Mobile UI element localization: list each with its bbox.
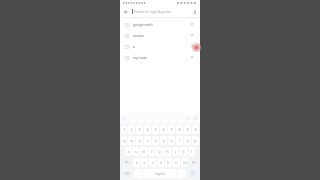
staticText: s	[135, 149, 137, 154]
staticText: ,	[137, 171, 139, 176]
button[interactable]: Back	[122, 8, 129, 15]
staticText: l	[191, 149, 192, 154]
staticText: 7	[170, 127, 173, 132]
button[interactable]: Search for apps & games	[132, 6, 191, 17]
staticText: 0	[194, 127, 197, 132]
staticText: i	[179, 138, 180, 143]
button[interactable]: y	[160, 136, 167, 145]
staticText: v	[160, 160, 162, 165]
button[interactable]: g	[156, 147, 163, 156]
staticText: x	[143, 160, 146, 165]
button[interactable]: 9	[184, 125, 191, 134]
staticText: a	[127, 149, 130, 154]
button[interactable]: l	[188, 147, 195, 156]
staticText: u	[170, 138, 173, 143]
staticText: k	[182, 149, 185, 154]
staticText: Search for apps & games	[134, 10, 172, 14]
button[interactable]: ?123	[121, 169, 133, 178]
staticText: b	[167, 160, 170, 165]
button[interactable]: Backspace	[189, 158, 199, 167]
button[interactable]: google earth	[120, 19, 200, 30]
staticText: 4	[146, 127, 149, 132]
button[interactable]: b	[165, 158, 172, 167]
button[interactable]: d	[140, 147, 147, 156]
staticText: 5	[154, 127, 157, 132]
button[interactable]: j	[172, 147, 179, 156]
staticText: movies	[133, 34, 144, 38]
staticText: f	[151, 149, 153, 154]
staticText: r	[147, 138, 149, 143]
button[interactable]: n	[173, 158, 180, 167]
staticText: g	[158, 149, 161, 154]
button[interactable]: 5	[152, 125, 159, 134]
staticText: q	[123, 138, 126, 143]
button[interactable]: my route	[120, 52, 200, 63]
button[interactable]: x	[141, 158, 148, 167]
staticText: n	[175, 160, 178, 165]
button[interactable]: m	[181, 158, 188, 167]
staticText: o	[186, 138, 189, 143]
button[interactable]: Search	[187, 169, 199, 178]
button[interactable]: i	[176, 136, 183, 145]
staticText: j	[175, 149, 176, 154]
staticText: y	[163, 138, 165, 143]
button[interactable]: 3	[136, 125, 143, 134]
button[interactable]: 7	[168, 125, 175, 134]
staticText: 1	[123, 127, 126, 132]
staticText: h	[166, 149, 169, 154]
button[interactable]: o	[184, 136, 191, 145]
staticText: t	[155, 138, 157, 143]
staticText: 2	[130, 127, 133, 132]
staticText: .	[181, 171, 183, 176]
button[interactable]: Shift	[121, 158, 132, 167]
button[interactable]: e	[136, 136, 143, 145]
button[interactable]: f	[148, 147, 155, 156]
button[interactable]: q	[121, 136, 127, 145]
staticText: google earth	[133, 23, 153, 27]
button[interactable]: a	[125, 147, 131, 156]
staticText: d	[142, 149, 145, 154]
button[interactable]: ,	[134, 169, 142, 178]
button[interactable]: movies	[120, 30, 200, 41]
button[interactable]: t	[152, 136, 159, 145]
button[interactable]: 1	[121, 125, 127, 134]
button[interactable]: c	[149, 158, 156, 167]
staticText: 9	[186, 127, 189, 132]
button[interactable]: a	[120, 41, 200, 52]
button[interactable]: u	[168, 136, 175, 145]
button[interactable]: 6	[160, 125, 167, 134]
button[interactable]: z	[133, 158, 140, 167]
button[interactable]: v	[157, 158, 164, 167]
button[interactable]: s	[132, 147, 139, 156]
staticText: e	[138, 138, 141, 143]
staticText: 6	[162, 127, 165, 132]
button[interactable]: Voice search	[191, 8, 198, 15]
button[interactable]: h	[164, 147, 171, 156]
button[interactable]: p	[192, 136, 199, 145]
staticText: c	[152, 160, 154, 165]
button[interactable]: w	[128, 136, 135, 145]
staticText: w	[130, 138, 133, 143]
staticText: a	[133, 45, 135, 49]
staticText: z	[136, 160, 138, 165]
staticText: English	[155, 172, 165, 176]
button[interactable]: r	[144, 136, 151, 145]
button[interactable]: 2	[128, 125, 135, 134]
staticText: 3	[138, 127, 141, 132]
button[interactable]: 4	[144, 125, 151, 134]
staticText: m	[183, 160, 187, 165]
staticText: ?123	[124, 172, 130, 176]
button[interactable]: k	[180, 147, 187, 156]
button[interactable]: English	[143, 169, 177, 178]
button[interactable]: 8	[176, 125, 183, 134]
button[interactable]: 0	[192, 125, 199, 134]
staticText: 8	[178, 127, 181, 132]
staticText: my route	[133, 56, 147, 60]
staticText: p	[194, 138, 197, 143]
